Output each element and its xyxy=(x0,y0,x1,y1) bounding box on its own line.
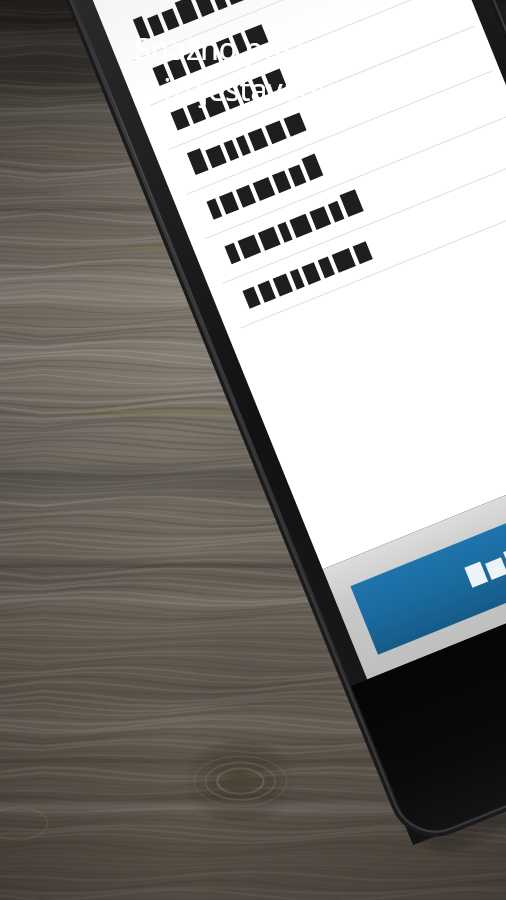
staticText: izvještavanje xyxy=(163,69,343,110)
button[interactable]: Phone preview of the reporting app xyxy=(0,0,506,900)
staticText: Snažno poslovno xyxy=(134,28,373,69)
